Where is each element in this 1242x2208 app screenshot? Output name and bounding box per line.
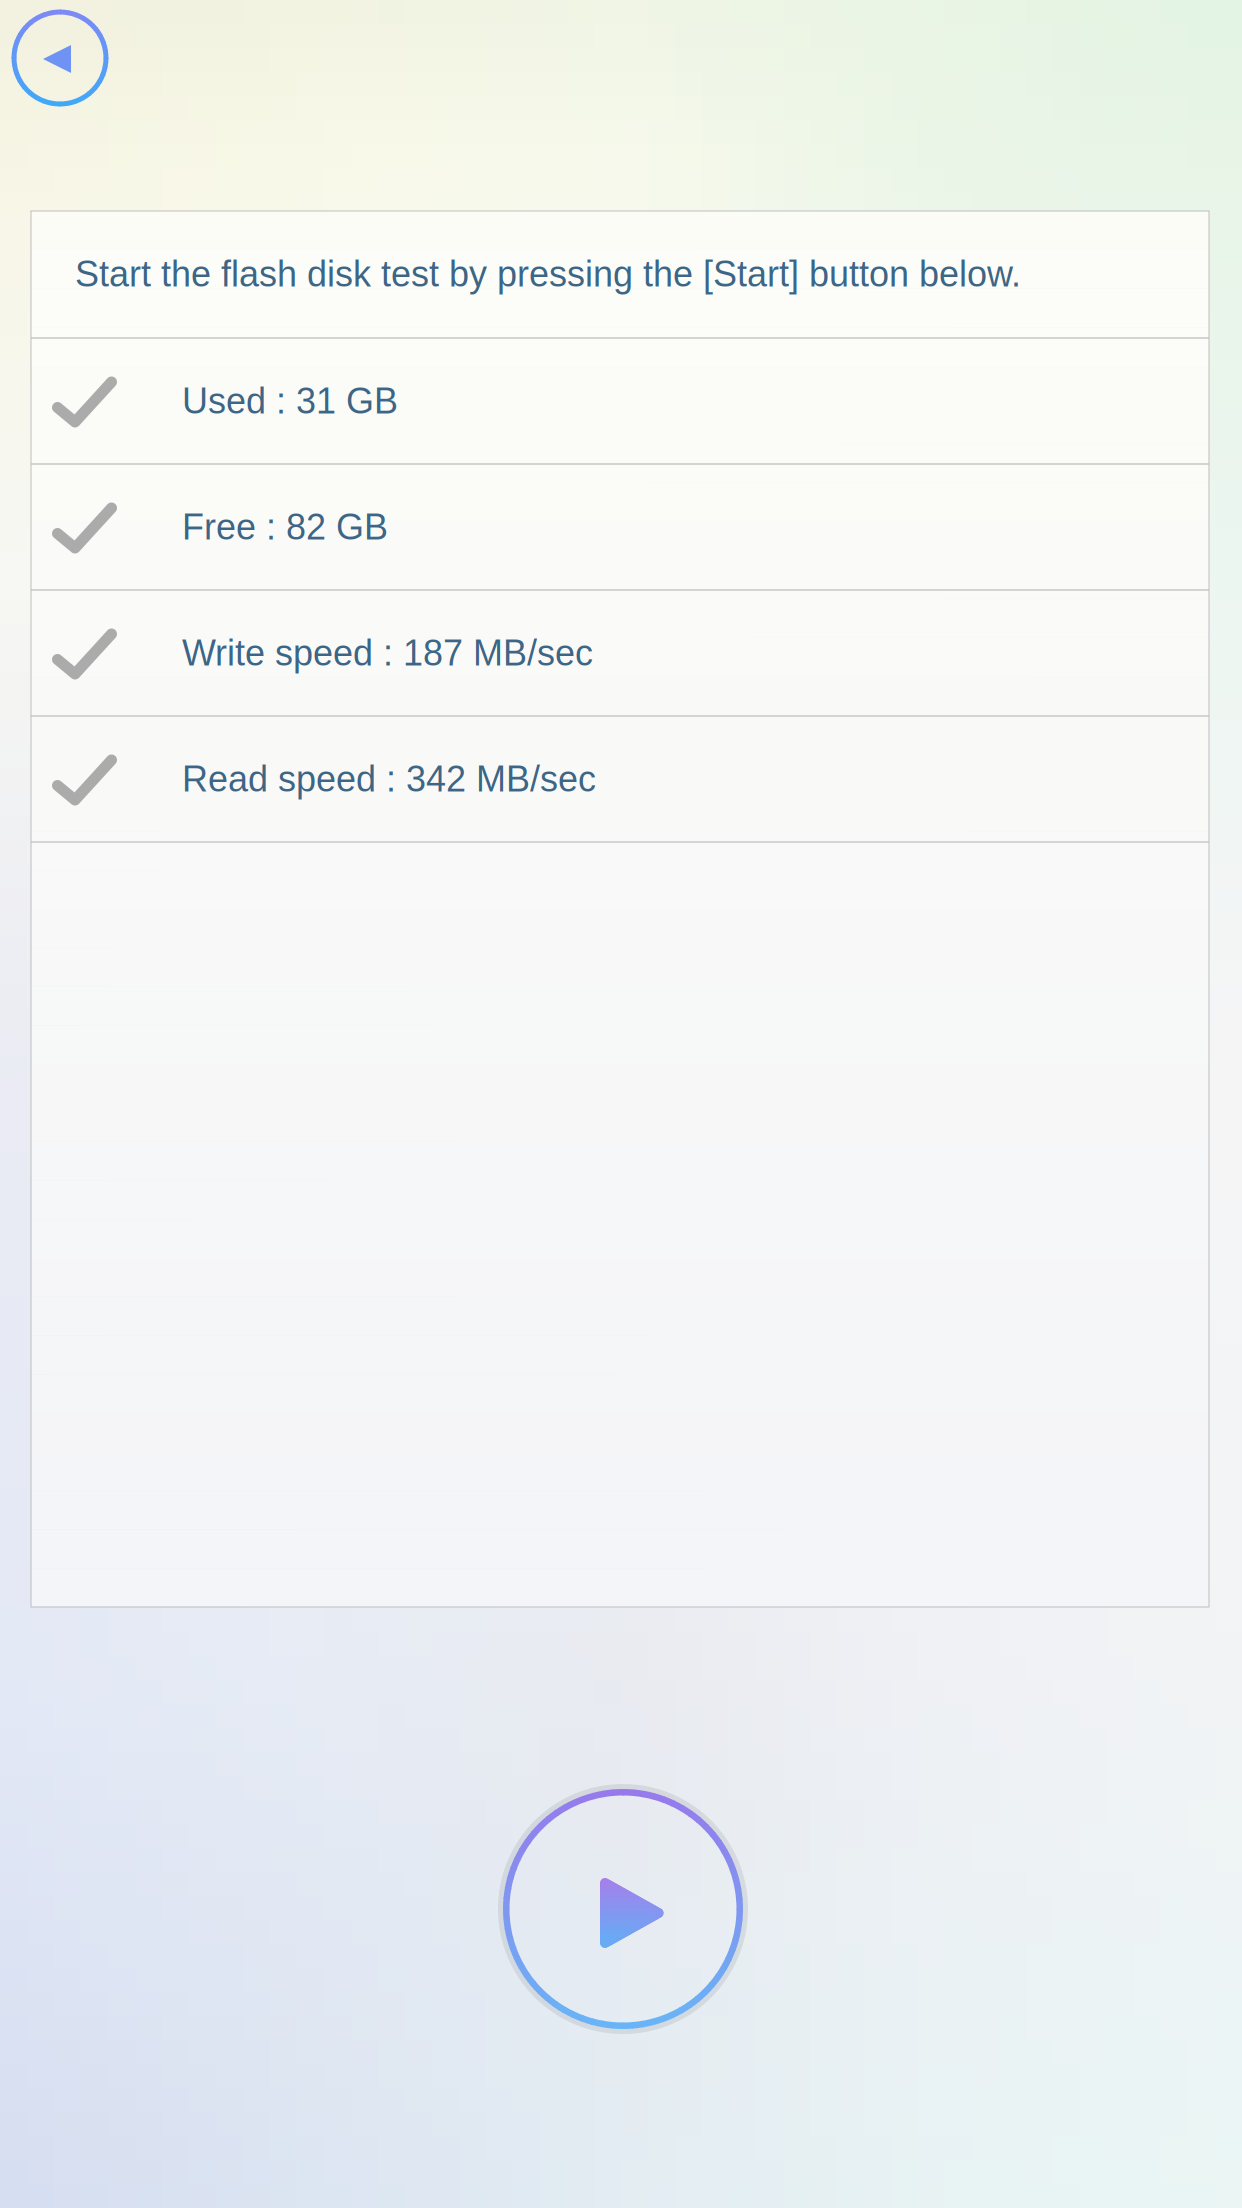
button[interactable]: Start test — [491, 1777, 755, 2041]
staticText: Write speed : 187 MB/sec — [182, 633, 593, 673]
staticText: Free : 82 GB — [182, 507, 388, 547]
button[interactable]: Back — [4, 2, 116, 114]
staticText: Start the flash disk test by pressing th… — [75, 254, 1021, 294]
staticText: Read speed : 342 MB/sec — [182, 759, 596, 799]
staticText: Used : 31 GB — [182, 381, 398, 421]
